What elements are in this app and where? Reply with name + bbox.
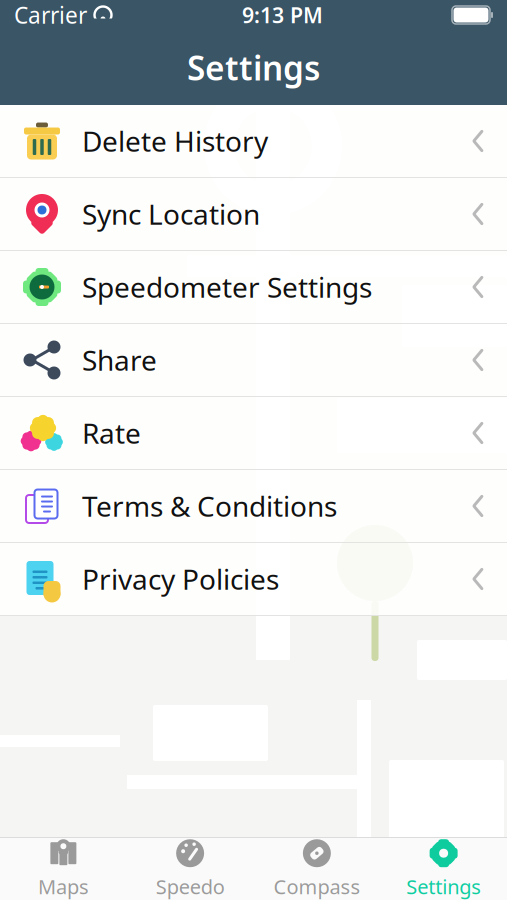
- button[interactable]: Maps: [0, 838, 127, 900]
- staticText: Delete History: [82, 122, 268, 160]
- button[interactable]: Privacy Policies: [0, 543, 507, 615]
- staticText: Rate: [82, 414, 141, 452]
- staticText: Speedometer Settings: [82, 268, 372, 306]
- staticText: Speedo: [156, 873, 225, 900]
- button[interactable]: Delete History: [0, 105, 507, 177]
- staticText: [87, 0, 93, 30]
- staticText: Share: [82, 341, 157, 379]
- staticText: Terms & Conditions: [82, 487, 337, 525]
- staticText: Privacy Policies: [82, 560, 279, 598]
- staticText: 9:13 PM: [242, 1, 323, 29]
- staticText: Maps: [38, 873, 89, 900]
- button[interactable]: Share: [0, 324, 507, 396]
- staticText: Carrier: [14, 0, 87, 30]
- staticText: Compass: [273, 873, 360, 900]
- button[interactable]: Compass: [253, 838, 380, 900]
- button[interactable]: Settings: [380, 838, 507, 900]
- staticText: Settings: [187, 45, 320, 90]
- button[interactable]: Terms & Conditions: [0, 470, 507, 542]
- staticText: Settings: [406, 873, 481, 900]
- staticText: Sync Location: [82, 195, 260, 233]
- button[interactable]: Sync Location: [0, 178, 507, 250]
- button[interactable]: Rate: [0, 397, 507, 469]
- button[interactable]: Speedo: [127, 838, 254, 900]
- button[interactable]: Speedometer Settings: [0, 251, 507, 323]
